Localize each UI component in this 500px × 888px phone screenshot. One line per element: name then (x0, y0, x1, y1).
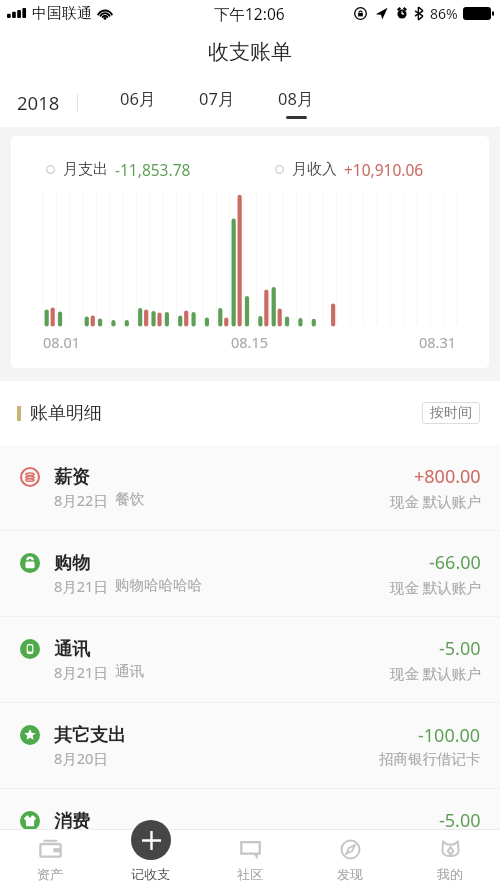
staticText: 8月21日 (54, 576, 108, 596)
staticText: 购物哈哈哈哈 (115, 576, 202, 594)
staticText: 月收入 (292, 160, 337, 179)
button[interactable]: 记收支 (100, 829, 200, 888)
staticText: 薪资 (54, 466, 90, 489)
staticText: 现金 默认账户 (390, 663, 481, 683)
staticText: 中国联通 (32, 4, 92, 23)
staticText: 我的 (437, 866, 463, 882)
button[interactable]: 社区 (200, 829, 300, 888)
staticText: 招商银行借记卡 (379, 750, 481, 768)
button[interactable]: 2018 (0, 78, 77, 127)
staticText: 8月20日 (54, 748, 108, 768)
button[interactable]: 其它支出 (0, 703, 500, 789)
button[interactable]: 08月 (256, 78, 335, 127)
staticText: -5.00 (439, 636, 481, 661)
staticText: 按时间 (430, 404, 472, 422)
button[interactable]: 通讯 (0, 617, 500, 703)
staticText: -11,853.78 (115, 159, 191, 180)
button[interactable]: 按时间 (422, 402, 480, 424)
staticText: 资产 (37, 866, 63, 882)
staticText: 餐饮 (115, 490, 144, 508)
staticText: 社区 (237, 866, 263, 882)
staticText: -5.00 (439, 808, 481, 833)
button[interactable]: 07月 (177, 78, 256, 127)
button[interactable]: 记收支 (131, 820, 171, 860)
staticText: 08月 (278, 87, 314, 110)
button[interactable]: 消费 (0, 789, 500, 875)
staticText: 消费 (54, 810, 90, 833)
staticText: -66.00 (429, 550, 481, 575)
staticText: +800.00 (414, 464, 481, 489)
staticText: 08.31 (419, 332, 457, 352)
staticText: 其它支出 (54, 724, 126, 747)
staticText: 06月 (120, 87, 156, 110)
staticText: 2018 (17, 90, 60, 115)
staticText: 07月 (199, 87, 235, 110)
button[interactable]: 06月 (98, 78, 177, 127)
staticText: 通讯 (54, 638, 90, 661)
staticText: 通讯 (115, 662, 144, 680)
staticText: 月支出 (63, 160, 108, 179)
staticText: 下午12:06 (214, 3, 285, 24)
staticText: 收支账单 (208, 39, 292, 65)
staticText: 账单明细 (30, 402, 102, 425)
staticText: 8月21日 (54, 662, 108, 682)
staticText: 购物 (54, 552, 90, 575)
staticText: 8月22日 (54, 490, 108, 510)
staticText: 08.15 (231, 332, 269, 352)
staticText: 记收支 (131, 866, 170, 882)
staticText: -100.00 (418, 723, 481, 748)
staticText: +10,910.06 (344, 159, 424, 180)
staticText: 08.01 (43, 332, 81, 352)
button[interactable]: 发现 (300, 829, 400, 888)
staticText: 86% (430, 4, 458, 23)
staticText: 发现 (337, 866, 363, 882)
button[interactable]: 资产 (0, 829, 100, 888)
staticText: 现金 默认账户 (390, 577, 481, 597)
staticText: 8月20日 (54, 834, 108, 854)
button[interactable]: 购物 (0, 531, 500, 617)
button[interactable]: 我的 (400, 829, 500, 888)
button[interactable]: 薪资 (0, 445, 500, 531)
staticText: 现金 默认账户 (390, 491, 481, 511)
